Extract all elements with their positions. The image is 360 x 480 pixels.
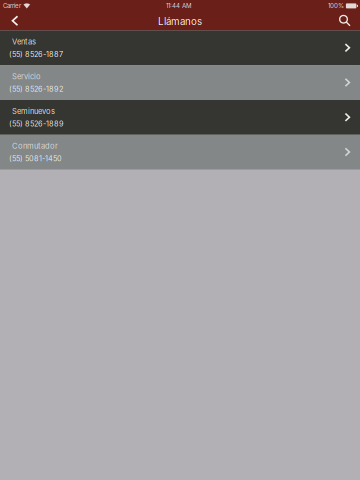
staticText: 11:44 AM bbox=[166, 2, 192, 10]
button[interactable]: Ventas bbox=[0, 30, 360, 65]
staticText: Llámanos bbox=[158, 16, 202, 27]
staticText: (55) 5081-1450 bbox=[9, 154, 62, 163]
button[interactable]: Back bbox=[0, 12, 30, 29]
button[interactable]: Seminuevos bbox=[0, 100, 360, 135]
staticText: Servicio bbox=[12, 72, 41, 81]
button[interactable]: Servicio bbox=[0, 65, 360, 100]
button[interactable]: Search bbox=[330, 12, 360, 29]
staticText: Seminuevos bbox=[12, 107, 55, 116]
staticText: (55) 8526-1887 bbox=[9, 50, 63, 59]
staticText: Conmutador bbox=[12, 141, 58, 150]
button[interactable]: Conmutador bbox=[0, 135, 360, 170]
staticText: Carrier bbox=[3, 2, 21, 10]
staticText: Ventas bbox=[12, 37, 36, 46]
staticText: (55) 8526-1892 bbox=[9, 84, 63, 93]
staticText: 100% bbox=[328, 2, 344, 10]
staticText: (55) 8526-1889 bbox=[9, 119, 64, 128]
